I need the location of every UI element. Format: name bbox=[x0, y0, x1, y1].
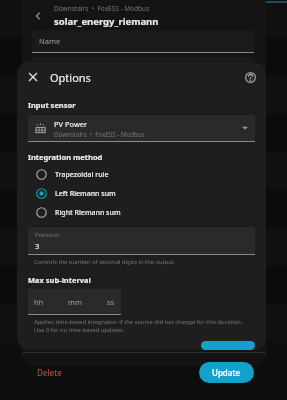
staticText: Applies time-based integration if the so… bbox=[34, 318, 251, 334]
staticText: Trapezoidal rule bbox=[55, 170, 109, 180]
staticText: Input sensor bbox=[28, 100, 76, 110]
staticText: Max sub-interval bbox=[28, 275, 91, 285]
staticText: Left Riemann sum bbox=[55, 189, 116, 199]
button[interactable]: PV Power bbox=[28, 115, 255, 141]
button[interactable]: Name bbox=[32, 30, 254, 52]
staticText: Options bbox=[50, 70, 91, 85]
button[interactable]: Back bbox=[28, 6, 48, 26]
button[interactable]: hh bbox=[28, 289, 121, 314]
button[interactable]: Precision bbox=[28, 227, 255, 254]
staticText: solar_energy_riemann bbox=[54, 15, 159, 28]
staticText: Downstairs • FoxESS - Modbus bbox=[54, 4, 150, 13]
button[interactable]: Trapezoidal rule bbox=[28, 165, 255, 184]
staticText: Delete bbox=[37, 367, 62, 378]
staticText: Integration method bbox=[28, 152, 103, 162]
staticText: 3 bbox=[35, 241, 40, 251]
staticText: Update bbox=[212, 367, 241, 378]
button[interactable]: Submit bbox=[201, 341, 255, 350]
staticText: Name bbox=[39, 36, 61, 46]
staticText: Right Riemann sum bbox=[55, 208, 121, 218]
button[interactable]: Delete bbox=[34, 363, 65, 382]
staticText: ss bbox=[107, 297, 115, 307]
staticText: Downstairs • FoxESS - Modbus bbox=[54, 130, 145, 138]
button[interactable]: Update bbox=[199, 362, 254, 383]
button[interactable]: Left Riemann sum bbox=[28, 184, 255, 203]
button[interactable]: Help bbox=[242, 69, 258, 85]
staticText: hh bbox=[34, 297, 44, 307]
staticText: PV Power bbox=[54, 119, 88, 129]
staticText: Controls the number of decimal digits in… bbox=[34, 258, 176, 266]
staticText: mm bbox=[68, 297, 83, 307]
button[interactable]: Close bbox=[25, 69, 41, 85]
staticText: Precision bbox=[35, 231, 60, 239]
button[interactable]: Right Riemann sum bbox=[28, 203, 255, 222]
